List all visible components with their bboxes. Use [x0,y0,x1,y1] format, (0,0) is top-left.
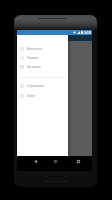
button[interactable]: Правила [17,53,68,62]
staticText: Выйти [27,94,36,98]
button[interactable]: Back [31,156,40,167]
staticText: О программе [27,84,44,88]
button[interactable]: Home [51,156,60,167]
staticText: Настройки [27,65,41,69]
button[interactable]: Мои анкеты [17,44,68,53]
button[interactable]: Recent apps [74,156,83,167]
staticText: Правила [27,56,38,60]
button[interactable]: Выйти [17,91,68,100]
staticText: 3:59 [84,30,91,35]
button[interactable]: О программе [17,81,68,90]
button[interactable]: Настройки [17,62,68,71]
staticText: Мои анкеты [27,47,43,51]
